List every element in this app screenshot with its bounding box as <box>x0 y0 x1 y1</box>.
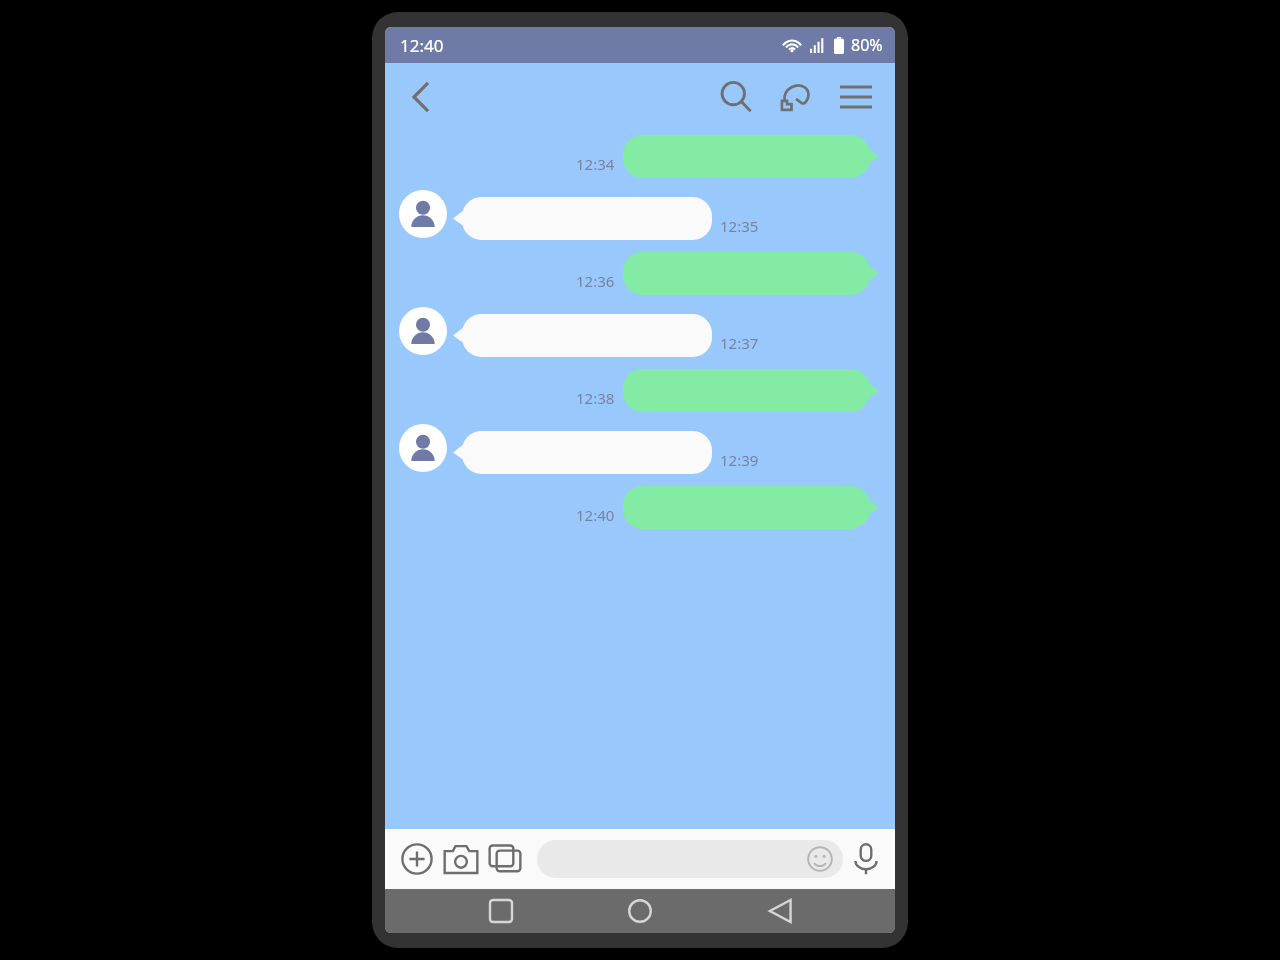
button[interactable]: Back <box>401 77 441 117</box>
button[interactable] <box>453 314 712 357</box>
staticText: 12:34 <box>576 154 615 174</box>
button[interactable]: Contact avatar <box>399 424 447 472</box>
staticText: 12:36 <box>576 271 615 291</box>
staticText: 12:40 <box>400 34 444 57</box>
staticText: 12:38 <box>576 388 615 408</box>
button[interactable]: Call <box>773 74 819 120</box>
staticText: 12:40 <box>576 505 615 525</box>
button[interactable]: Contact avatar <box>399 190 447 238</box>
button[interactable]: Back <box>756 889 804 933</box>
button[interactable]: Contact avatar <box>399 307 447 355</box>
button[interactable]: Emoji <box>805 844 835 874</box>
button[interactable]: Home <box>616 889 664 933</box>
button[interactable] <box>453 197 712 240</box>
staticText: 12:35 <box>720 216 759 236</box>
staticText: 80% <box>851 34 883 56</box>
button[interactable] <box>623 252 879 295</box>
button[interactable]: Voice message <box>843 836 889 882</box>
staticText: 12:37 <box>720 333 759 353</box>
button[interactable]: Menu <box>833 74 879 120</box>
button[interactable] <box>453 431 712 474</box>
button[interactable]: Recent apps <box>477 889 525 933</box>
button[interactable]: Emoji <box>537 840 843 878</box>
button[interactable] <box>623 369 879 412</box>
button[interactable]: Gallery <box>483 837 527 881</box>
button[interactable]: Search <box>713 74 759 120</box>
button[interactable]: Camera <box>439 837 483 881</box>
staticText: 12:39 <box>720 450 759 470</box>
button[interactable] <box>623 486 879 529</box>
button[interactable]: Add attachment <box>395 837 439 881</box>
button[interactable] <box>623 135 879 178</box>
